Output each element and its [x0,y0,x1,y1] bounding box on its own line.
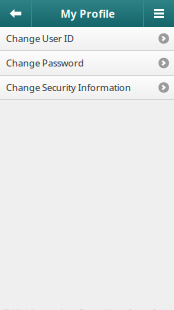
staticText: Change User ID [6,32,74,45]
staticText: Change Password [6,57,84,69]
button[interactable]: Menu [144,0,174,27]
button[interactable]: Change User ID [0,27,174,51]
button[interactable]: Change Security Information [0,76,174,100]
staticText: © 2014 Company Inc. Terms of Use Privacy… [3,307,170,310]
button[interactable]: Change Password [0,51,174,76]
staticText: My Profile [60,6,114,21]
staticText: Change Security Information [6,81,131,94]
button[interactable]: Back [0,0,31,27]
